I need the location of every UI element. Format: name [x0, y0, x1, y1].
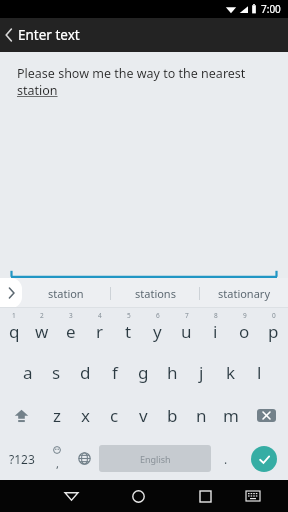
staticText: 8	[214, 311, 218, 320]
button[interactable]: .	[211, 437, 240, 480]
staticText: a	[23, 361, 33, 384]
staticText: station	[48, 286, 84, 301]
staticText: 0	[272, 311, 276, 320]
button[interactable]: stationary	[200, 278, 288, 308]
staticText: English	[140, 453, 171, 465]
staticText: stationary	[218, 286, 270, 301]
button[interactable]: English	[99, 445, 211, 472]
button[interactable]: c	[100, 394, 129, 437]
staticText: ,	[56, 456, 59, 471]
button[interactable]: g	[129, 351, 158, 394]
staticText: station	[17, 82, 58, 99]
button[interactable]: v	[129, 394, 158, 437]
button[interactable]: Home	[119, 480, 158, 512]
button[interactable]: 7	[172, 308, 201, 351]
staticText: c	[110, 404, 119, 427]
staticText: k	[226, 361, 236, 384]
staticText: .	[224, 451, 228, 467]
button[interactable]: Back	[0, 18, 18, 52]
staticText: 6	[156, 311, 160, 320]
staticText: j	[199, 361, 204, 384]
staticText: Please show me the way to the nearest	[17, 65, 249, 82]
button[interactable]: 9	[230, 308, 259, 351]
button[interactable]: More suggestions	[0, 278, 22, 308]
button[interactable]: z	[42, 394, 71, 437]
staticText: s	[52, 361, 61, 384]
button[interactable]: Shift	[0, 394, 42, 437]
button[interactable]: j	[187, 351, 216, 394]
button[interactable]: Enter	[240, 437, 288, 480]
button[interactable]: k	[216, 351, 245, 394]
staticText: q	[9, 320, 20, 343]
button[interactable]: a	[13, 351, 42, 394]
button[interactable]: 8	[201, 308, 230, 351]
button[interactable]: 3	[56, 308, 85, 351]
staticText: Enter text	[18, 26, 80, 44]
button[interactable]: Back	[52, 480, 91, 512]
button[interactable]: x	[71, 394, 100, 437]
staticText: o	[239, 320, 250, 343]
staticText: t	[125, 320, 132, 343]
button[interactable]: Backspace	[245, 394, 288, 437]
staticText: 9	[243, 311, 247, 320]
staticText: ?123	[9, 451, 35, 467]
staticText: d	[80, 361, 91, 384]
button[interactable]: 5	[114, 308, 143, 351]
staticText: stations	[135, 286, 176, 301]
staticText: n	[196, 404, 207, 427]
staticText: b	[167, 404, 178, 427]
button[interactable]: b	[158, 394, 187, 437]
button[interactable]: h	[158, 351, 187, 394]
button[interactable]: f	[100, 351, 129, 394]
button[interactable]: l	[245, 351, 274, 394]
button[interactable]: m	[216, 394, 245, 437]
staticText: f	[112, 361, 118, 384]
button[interactable]: s	[42, 351, 71, 394]
staticText: v	[139, 404, 148, 427]
staticText: w	[35, 320, 49, 343]
staticText: e	[66, 320, 76, 343]
staticText: 4	[98, 311, 102, 320]
staticText: u	[181, 320, 192, 343]
staticText: i	[213, 320, 218, 343]
staticText: 3	[69, 311, 73, 320]
staticText: 2	[40, 311, 44, 320]
staticText: 7	[185, 311, 189, 320]
staticText: p	[268, 320, 279, 343]
staticText: 1	[12, 311, 16, 320]
button[interactable]: stations	[111, 278, 199, 308]
staticText: h	[167, 361, 178, 384]
button[interactable]: 2	[28, 308, 56, 351]
button[interactable]: Emoji and comma	[43, 437, 70, 480]
staticText: z	[53, 404, 61, 427]
button[interactable]: Switch keyboard	[233, 480, 272, 512]
button[interactable]: 1	[0, 308, 28, 351]
staticText: 5	[127, 311, 131, 320]
staticText: r	[96, 320, 104, 343]
button[interactable]: d	[71, 351, 100, 394]
button[interactable]: ?123	[0, 437, 43, 480]
button[interactable]: Change keyboard language	[70, 437, 99, 480]
staticText: g	[138, 361, 149, 384]
button[interactable]: Recents	[186, 480, 225, 512]
button[interactable]: 4	[85, 308, 114, 351]
button[interactable]: 0	[259, 308, 288, 351]
staticText: l	[257, 361, 262, 384]
staticText: x	[81, 404, 90, 427]
button[interactable]: station	[22, 278, 110, 308]
staticText: y	[153, 320, 162, 343]
button[interactable]: 6	[143, 308, 172, 351]
staticText: 7:00	[261, 2, 281, 16]
staticText: m	[223, 404, 239, 427]
button[interactable]: n	[187, 394, 216, 437]
